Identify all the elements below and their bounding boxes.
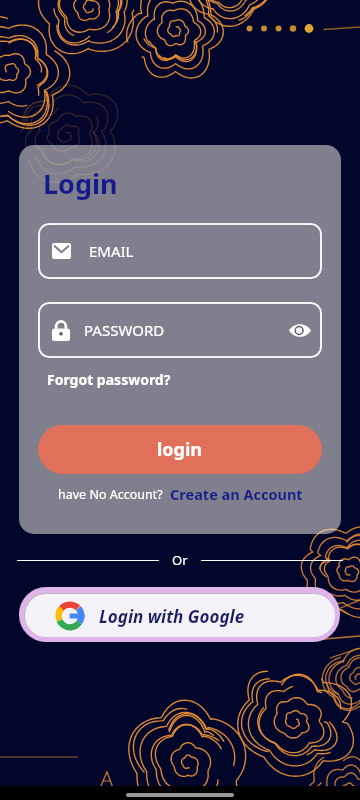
button[interactable]: PASSWORD (38, 302, 322, 358)
button[interactable]: Login with Google (19, 587, 340, 642)
staticText: Login with Google (99, 605, 245, 628)
button[interactable]: Show password (287, 317, 313, 343)
staticText: PASSWORD (84, 320, 165, 340)
staticText: Create an Account (170, 484, 303, 504)
staticText: Or (172, 551, 188, 569)
button[interactable]: EMAIL (38, 223, 322, 279)
button[interactable]: Create an Account (170, 484, 303, 504)
staticText: EMAIL (89, 241, 134, 261)
button[interactable]: Forgot password? (38, 370, 171, 389)
staticText: login (157, 437, 203, 462)
button[interactable]: login (38, 425, 322, 474)
staticText: have No Account? (58, 486, 163, 503)
staticText: Forgot password? (47, 370, 171, 389)
staticText: Login (43, 165, 118, 202)
